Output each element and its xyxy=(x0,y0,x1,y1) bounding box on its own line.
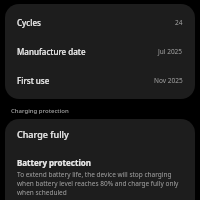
button[interactable]: Cycles xyxy=(5,8,195,37)
staticText: 24 xyxy=(175,18,183,27)
button[interactable]: Manufacture date xyxy=(5,37,195,66)
staticText: Nov 2025 xyxy=(154,76,183,85)
staticText: To extend battery life, the device will … xyxy=(17,170,183,197)
staticText: Jul 2025 xyxy=(158,47,183,56)
staticText: Cycles xyxy=(17,17,41,28)
staticText: Manufacture date xyxy=(17,46,86,57)
staticText: Charge fully xyxy=(17,128,69,140)
staticText: Battery protection xyxy=(17,157,91,168)
staticText: Charging protection xyxy=(11,107,69,115)
button[interactable]: First use xyxy=(5,66,195,95)
button[interactable]: Charge fully xyxy=(5,119,195,149)
staticText: First use xyxy=(17,75,50,86)
